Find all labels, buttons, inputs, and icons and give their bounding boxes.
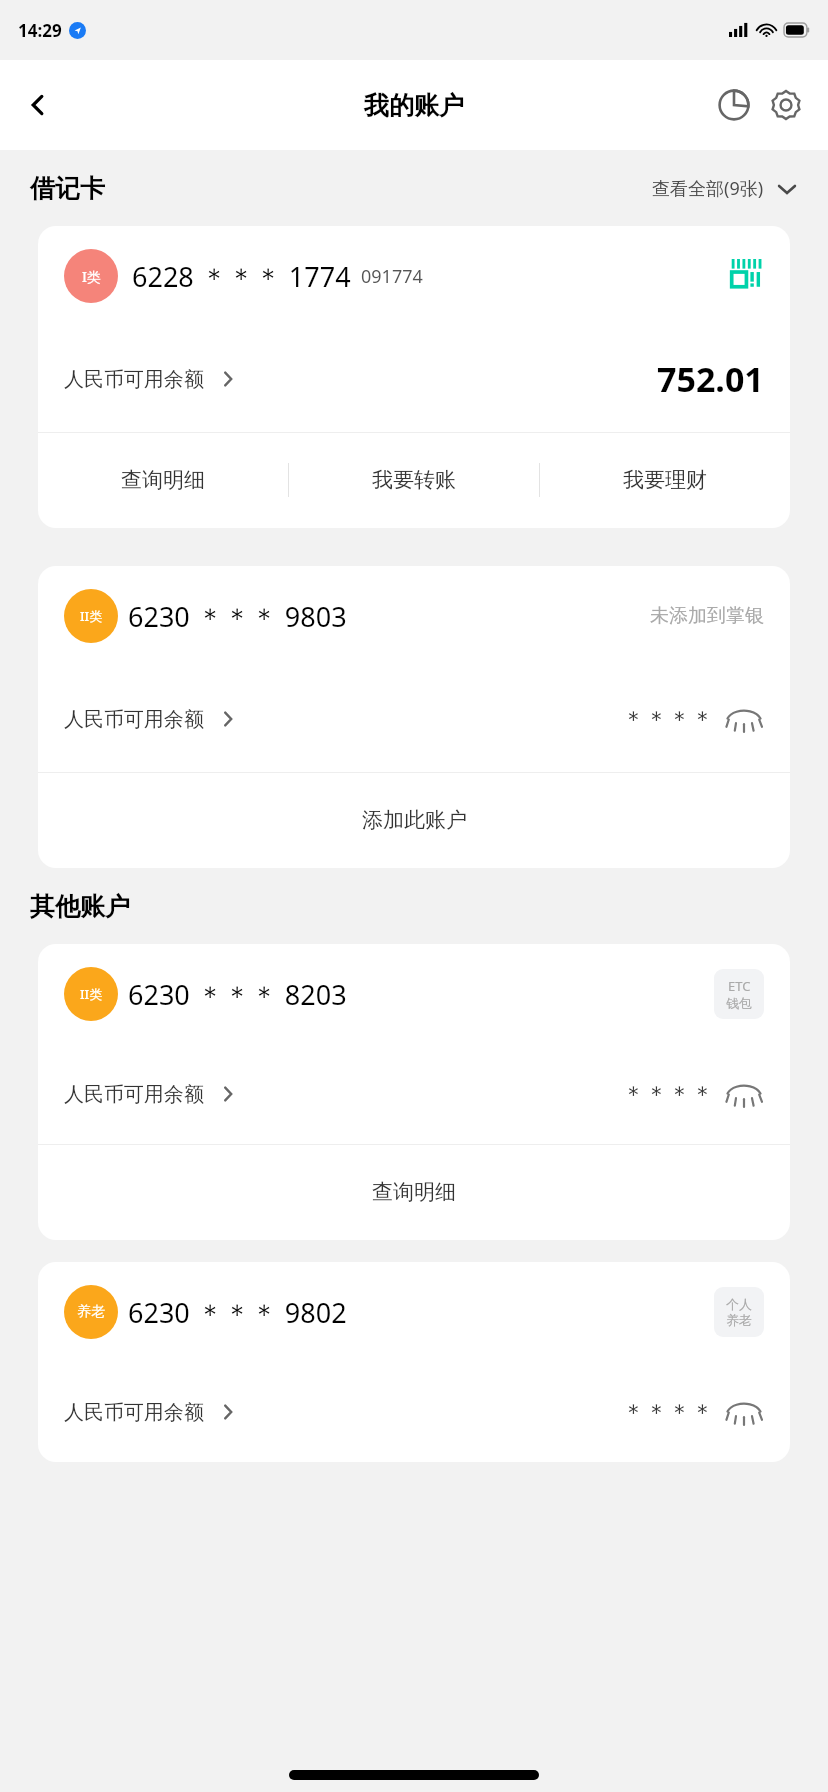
staticText: I类 <box>82 267 101 286</box>
staticText: 我的账户 <box>364 90 464 121</box>
button[interactable]: 添加此账户 <box>38 772 790 868</box>
staticText: II类 <box>80 607 103 625</box>
button[interactable]: Settings <box>760 79 812 131</box>
button[interactable]: 个人 <box>714 1287 764 1337</box>
staticText: 养老 <box>77 1303 105 1321</box>
staticText: 我要理财 <box>623 467 707 493</box>
button[interactable]: QR code <box>730 259 764 293</box>
button[interactable]: II类 <box>38 944 790 1044</box>
button[interactable]: 我要转账 <box>289 432 539 528</box>
staticText: ＊＊＊＊ <box>622 1080 714 1109</box>
staticText: 人民币可用余额 <box>64 1400 204 1425</box>
staticText: 其他账户 <box>30 891 130 922</box>
button[interactable]: 查询明细 <box>38 432 288 528</box>
button[interactable]: Statistics <box>708 79 760 131</box>
button[interactable]: 人民币可用余额 <box>38 1044 790 1144</box>
button[interactable]: II类 <box>38 566 790 666</box>
staticText: ETC <box>728 977 751 995</box>
staticText: ＊＊＊＊ <box>622 1398 714 1427</box>
button[interactable]: 查看全部(9张) <box>648 170 802 207</box>
button[interactable]: I类 <box>38 226 790 326</box>
staticText: 14:29 <box>18 19 62 42</box>
button[interactable]: 人民币可用余额 <box>38 326 790 432</box>
staticText: 查询明细 <box>121 467 205 493</box>
staticText: 添加此账户 <box>362 807 467 833</box>
staticText: 查询明细 <box>372 1179 456 1205</box>
staticText: 钱包 <box>726 995 752 1011</box>
staticText: 借记卡 <box>30 173 105 204</box>
button[interactable]: 我要理财 <box>540 432 790 528</box>
button[interactable]: 人民币可用余额 <box>38 1362 790 1462</box>
staticText: 养老 <box>726 1312 752 1328</box>
staticText: 人民币可用余额 <box>64 367 204 392</box>
staticText: 6228 ＊＊＊ 1774 <box>132 258 351 295</box>
staticText: ＊＊＊＊ <box>622 705 714 734</box>
staticText: 6230 ＊＊＊ 9803 <box>128 598 347 635</box>
staticText: 人民币可用余额 <box>64 707 204 732</box>
button[interactable]: Back <box>10 77 66 133</box>
staticText: 752.01 <box>657 356 764 402</box>
staticText: 6230 ＊＊＊ 9802 <box>128 1294 347 1331</box>
button[interactable]: 查询明细 <box>38 1144 790 1240</box>
button[interactable]: 人民币可用余额 <box>38 666 790 772</box>
staticText: II类 <box>80 985 103 1003</box>
button[interactable]: ETC <box>714 969 764 1019</box>
staticText: 未添加到掌银 <box>650 604 764 628</box>
staticText: 人民币可用余额 <box>64 1082 204 1107</box>
staticText: 查看全部(9张) <box>652 176 764 201</box>
staticText: 091774 <box>361 264 423 289</box>
staticText: 6230 ＊＊＊ 8203 <box>128 976 347 1013</box>
button[interactable]: 养老 <box>38 1262 790 1362</box>
staticText: 个人 <box>726 1296 752 1312</box>
staticText: 我要转账 <box>372 467 456 493</box>
